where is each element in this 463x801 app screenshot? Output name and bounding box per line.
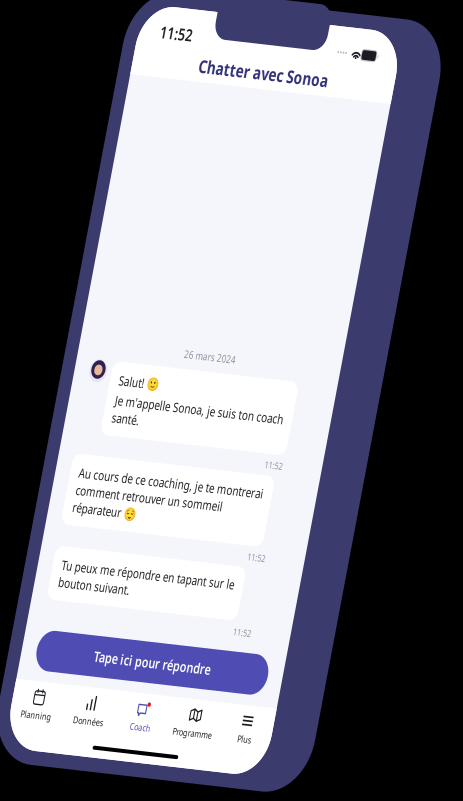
- button[interactable]: Programme: [253, 785, 331, 801]
- staticText: Tape ici pour répondre: [126, 736, 301, 758]
- button[interactable]: Tape ici pour répondre: [41, 724, 387, 770]
- staticText: Au cours de ce coaching, je te montrerai…: [54, 535, 330, 594]
- staticText: Chatter avec Sonoa: [117, 65, 311, 91]
- button[interactable]: Coach: [175, 785, 253, 801]
- staticText: Salut! 🙂: [87, 428, 147, 447]
- staticText: Je m'appelle Sonoa, je suis ton coach sa…: [87, 450, 339, 489]
- staticText: 11:52: [324, 610, 351, 624]
- staticText: Tu peux me répondre en tapant sur le bou…: [54, 640, 313, 679]
- staticText: 26 mars 2024: [175, 392, 252, 408]
